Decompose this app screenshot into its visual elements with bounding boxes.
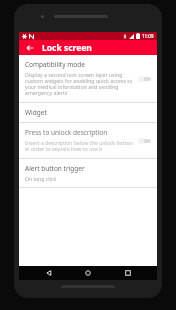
button[interactable]: Toggle Compatibility mode <box>138 74 152 84</box>
button[interactable]: Back <box>23 41 37 55</box>
button[interactable]: Widget <box>19 103 157 122</box>
button[interactable]: Press to unlock description <box>19 123 157 158</box>
staticText: Insert a description below the unlock bu… <box>25 139 134 153</box>
button[interactable]: Recent apps <box>118 266 138 280</box>
staticText: Lock screen <box>42 42 92 54</box>
staticText: Widget <box>25 108 47 117</box>
staticText: Press to unlock description <box>25 128 108 137</box>
button[interactable]: Toggle Press to unlock description <box>138 136 152 146</box>
button[interactable]: Back <box>39 266 59 280</box>
staticText: On long click <box>25 175 57 182</box>
staticText: Alert button trigger <box>25 164 85 173</box>
button[interactable]: Compatibility mode <box>19 55 157 102</box>
staticText: Display a second lock screen layer using… <box>25 71 134 97</box>
staticText: 11:09 <box>142 33 154 39</box>
button[interactable]: Alert button trigger <box>19 159 157 187</box>
staticText: Compatibility mode <box>25 60 85 69</box>
button[interactable]: Home <box>78 266 98 280</box>
